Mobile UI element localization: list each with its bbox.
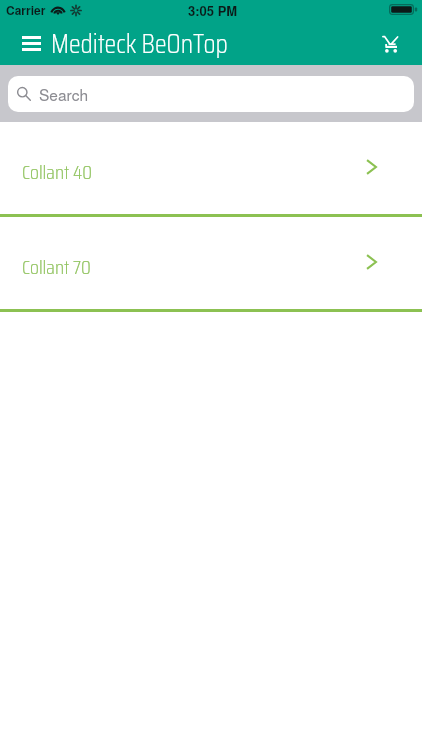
staticText: Collant 40 — [22, 156, 93, 187]
button[interactable]: Collant 70 — [0, 217, 422, 309]
staticText: Mediteck BeOnTop — [51, 22, 228, 63]
staticText: 3:05 PM — [188, 1, 238, 20]
button[interactable]: Open navigation menu — [8, 24, 54, 65]
button[interactable]: Collant 40 — [0, 122, 422, 214]
staticText: Collant 70 — [22, 251, 91, 282]
staticText: Carrier — [6, 1, 46, 18]
button[interactable]: Shopping cart — [367, 24, 413, 65]
staticText: Search — [39, 83, 89, 105]
button[interactable]: Search — [8, 76, 414, 112]
